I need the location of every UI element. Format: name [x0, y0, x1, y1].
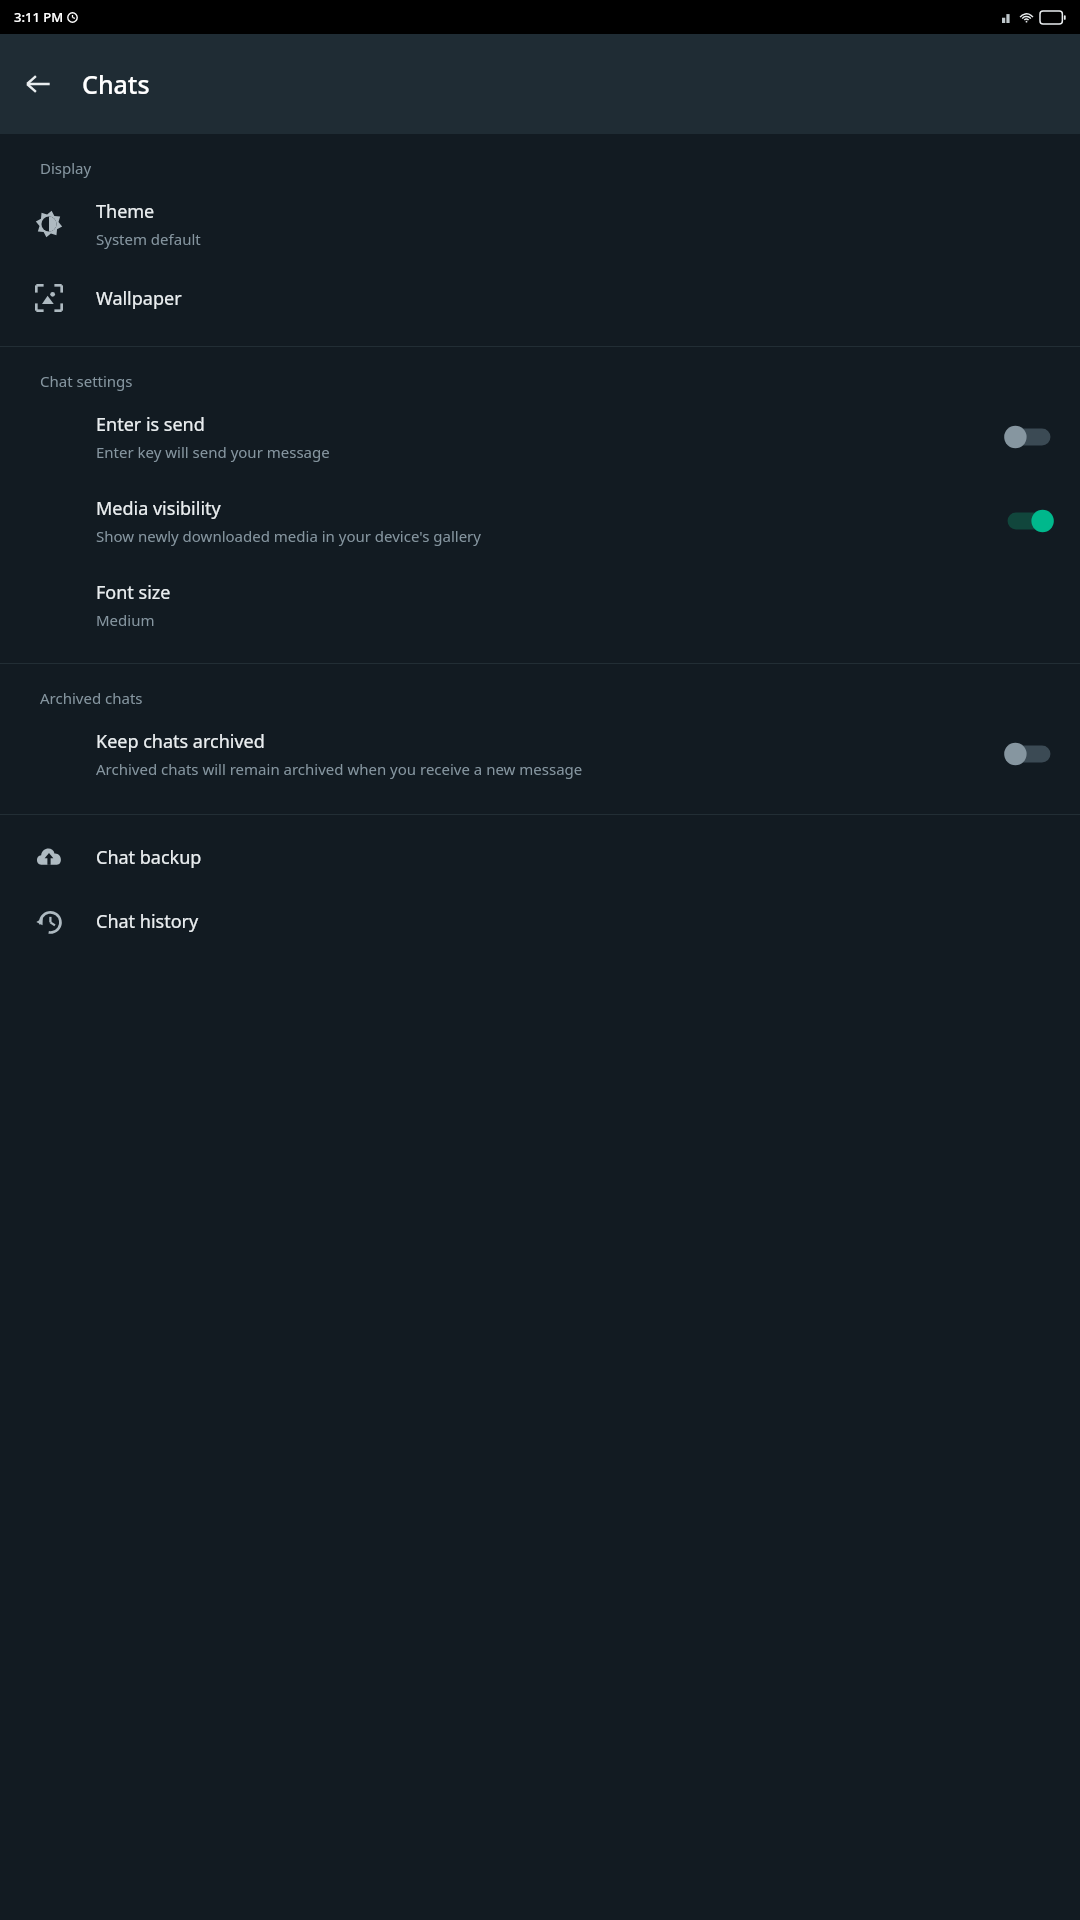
staticText: Wallpaper	[96, 286, 182, 311]
button[interactable]: Media visibility	[0, 479, 1080, 563]
staticText: Font size	[96, 580, 171, 605]
button[interactable]: Font size	[0, 563, 1080, 647]
button[interactable]: Chat backup	[0, 825, 1080, 889]
staticText: Chat settings	[40, 371, 133, 391]
staticText: Chat backup	[96, 845, 202, 870]
button[interactable]: Wallpaper	[0, 266, 1080, 330]
staticText: Display	[40, 158, 92, 178]
button[interactable]: Off	[1000, 420, 1058, 454]
staticText: Media visibility	[96, 496, 221, 521]
button[interactable]: Theme	[0, 182, 1080, 266]
staticText: Keep chats archived	[96, 729, 265, 754]
staticText: Show newly downloaded media in your devi…	[96, 526, 481, 546]
button[interactable]: On	[1000, 504, 1058, 538]
button[interactable]: Chat history	[0, 889, 1080, 953]
staticText: Chats	[82, 67, 150, 101]
button[interactable]: Enter is send	[0, 395, 1080, 479]
staticText: Medium	[96, 610, 155, 630]
button[interactable]: Keep chats archived	[0, 712, 1080, 796]
staticText: 3:11 PM	[14, 8, 64, 26]
button[interactable]: Off	[1000, 737, 1058, 771]
staticText: Chat history	[96, 909, 199, 934]
staticText: Enter is send	[96, 412, 205, 437]
staticText: Archived chats	[40, 688, 143, 708]
staticText: Theme	[96, 199, 155, 224]
staticText: Archived chats will remain archived when…	[96, 759, 583, 779]
button[interactable]: Back	[10, 56, 66, 112]
staticText: System default	[96, 229, 201, 249]
staticText: Enter key will send your message	[96, 442, 330, 462]
